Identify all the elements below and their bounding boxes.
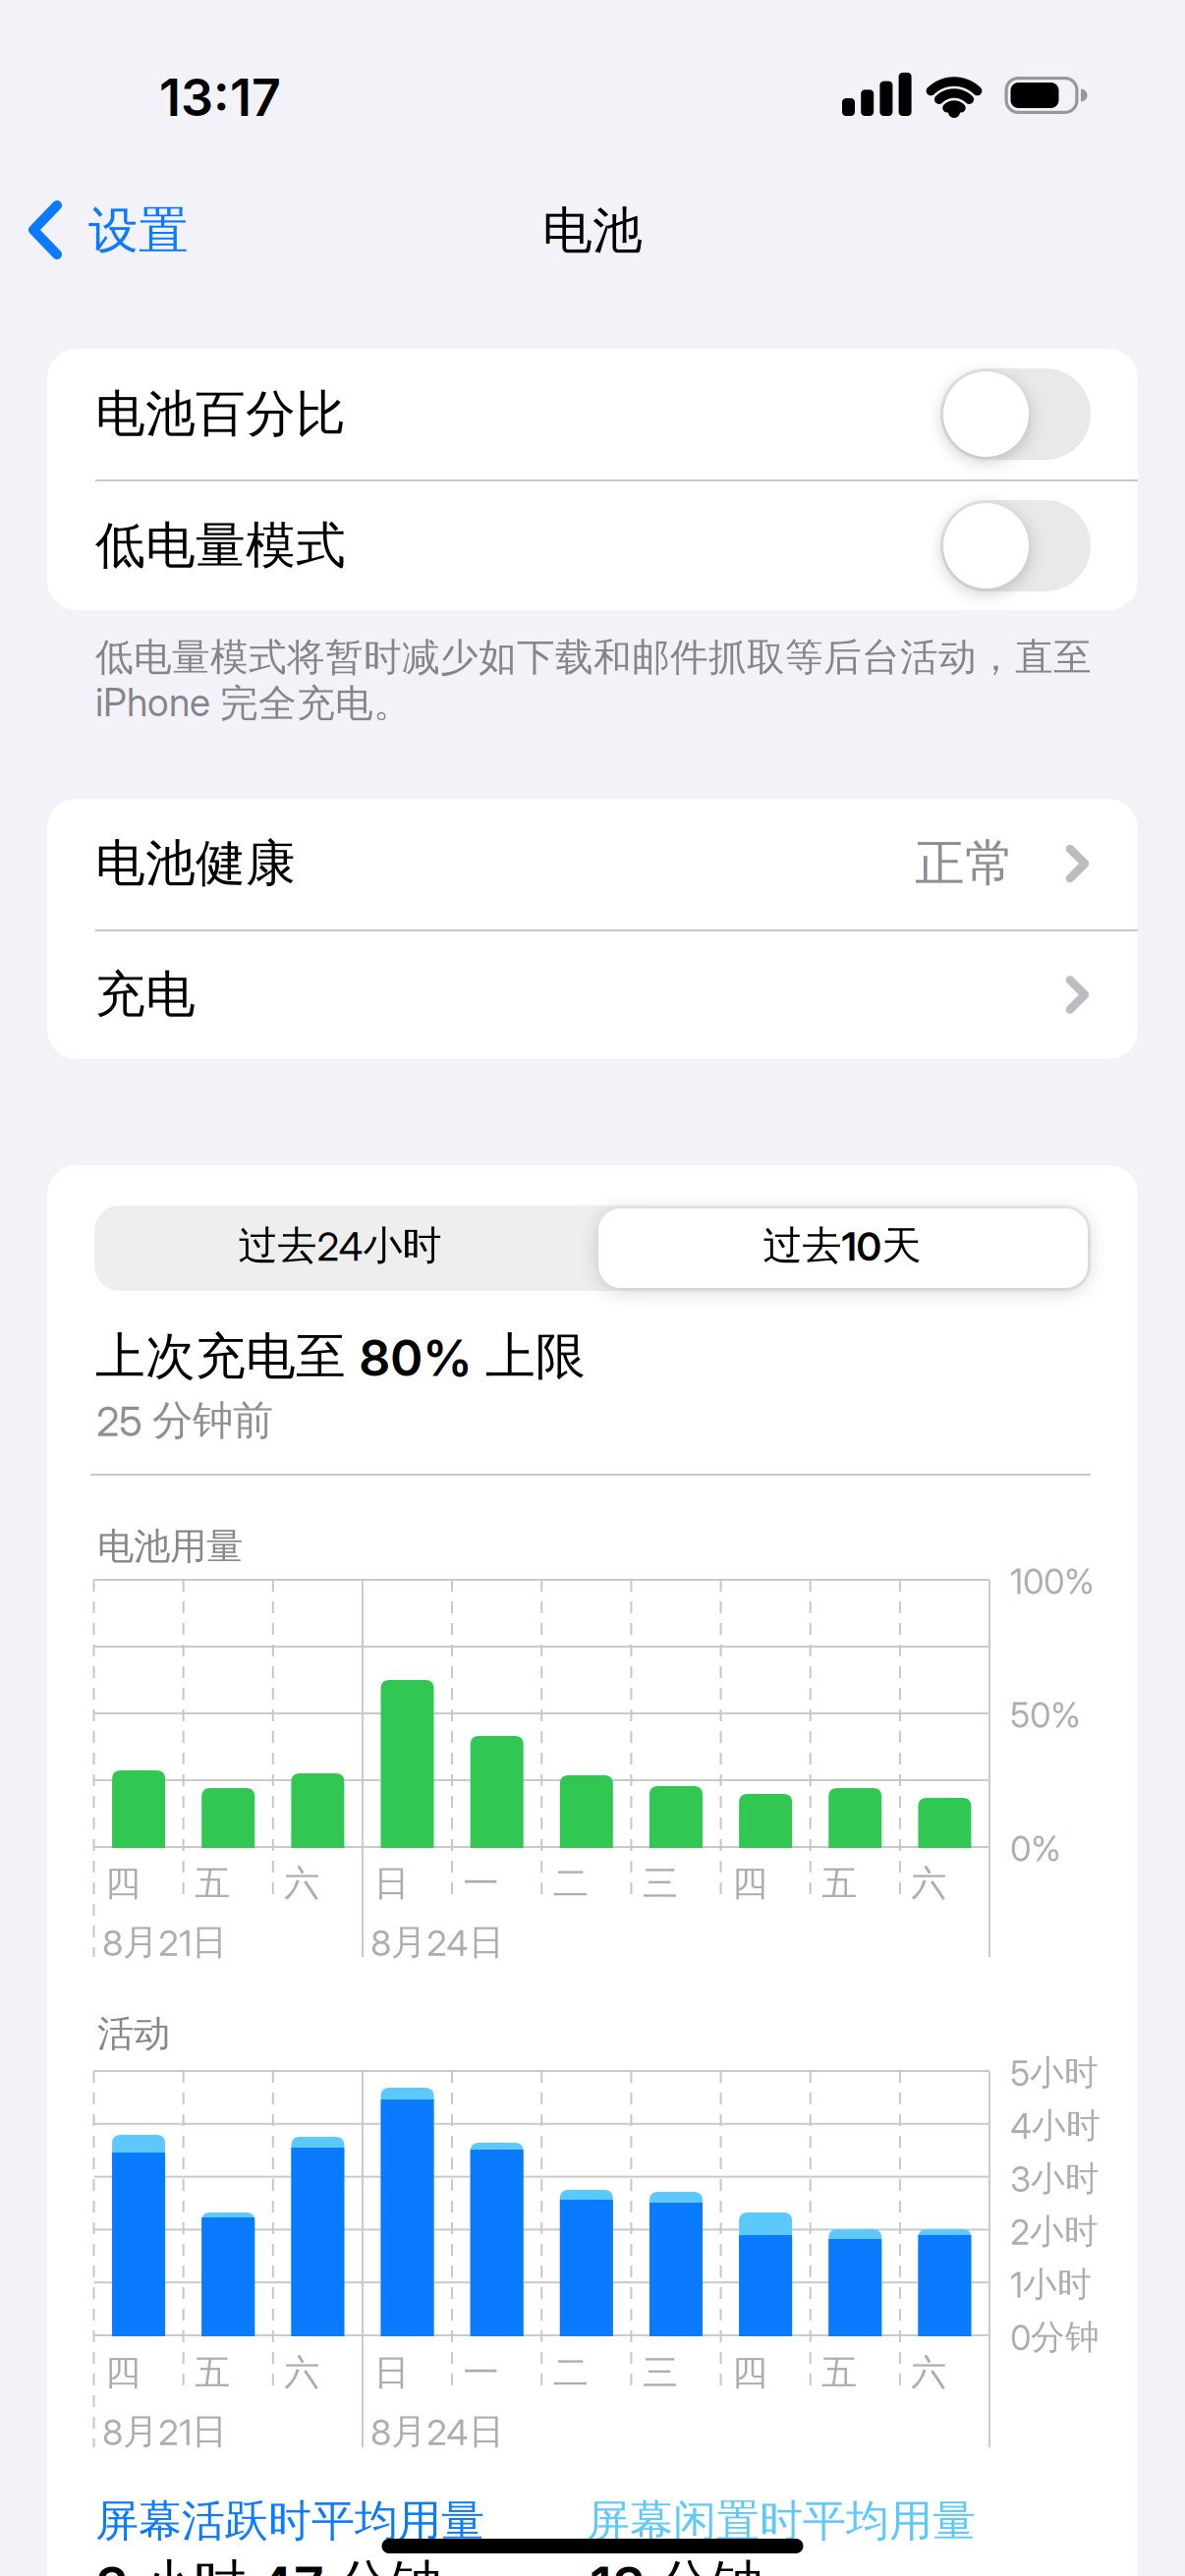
button[interactable]: 充电 xyxy=(47,930,1138,1060)
staticText: 一 xyxy=(463,2351,499,2394)
staticText: 日 xyxy=(374,2351,409,2394)
staticText: 100% xyxy=(1010,1562,1095,1602)
staticText: 二 xyxy=(553,2351,588,2394)
staticText: 四 xyxy=(105,1862,141,1905)
staticText: 3 小时 47 分钟 xyxy=(95,2553,441,2576)
staticText: 五 xyxy=(822,1862,857,1905)
staticText: iPhone 完全充电。 xyxy=(95,680,412,727)
staticText: 四 xyxy=(732,2351,767,2394)
staticText: 设置 xyxy=(88,200,189,261)
staticText: 2小时 xyxy=(1010,2211,1099,2252)
staticText: 0分钟 xyxy=(1010,2316,1100,2358)
staticText: 低电量模式将暂时减少如下载和邮件抓取等后台活动，直至 xyxy=(95,634,1092,681)
staticText: 0% xyxy=(1010,1829,1061,1869)
staticText: 8月21日 xyxy=(102,2410,227,2453)
staticText: 3小时 xyxy=(1010,2158,1100,2200)
button[interactable] xyxy=(940,368,1091,460)
staticText: 四 xyxy=(732,1862,767,1905)
staticText: 二 xyxy=(553,1862,588,1905)
staticText: 活动 xyxy=(97,2011,170,2056)
staticText: 五 xyxy=(822,2351,857,2394)
staticText: 13 分钟 xyxy=(590,2553,762,2576)
staticText: 五 xyxy=(195,2351,230,2394)
staticText: 5小时 xyxy=(1010,2052,1099,2094)
button[interactable]: 设置 xyxy=(10,182,241,280)
staticText: 电池百分比 xyxy=(95,384,346,445)
staticText: 六 xyxy=(911,2351,947,2394)
staticText: 低电量模式 xyxy=(95,515,346,576)
staticText: 上次充电至 80% 上限 xyxy=(95,1326,586,1387)
staticText: 过去24小时 xyxy=(238,1222,442,1270)
staticText: 8月24日 xyxy=(370,1921,504,1964)
staticText: 一 xyxy=(463,1862,499,1905)
staticText: 四 xyxy=(105,2351,141,2394)
staticText: 日 xyxy=(374,1862,409,1905)
staticText: 电池 xyxy=(542,200,643,261)
staticText: 三 xyxy=(643,1862,678,1905)
staticText: 25 分钟前 xyxy=(96,1396,273,1446)
staticText: 屏幕闲置时平均用量 xyxy=(587,2494,976,2548)
staticText: 1小时 xyxy=(1010,2263,1092,2305)
staticText: 六 xyxy=(911,1862,947,1905)
button[interactable]: 过去24小时 xyxy=(97,1205,595,1290)
staticText: 三 xyxy=(643,2351,678,2394)
staticText: 充电 xyxy=(95,964,196,1025)
staticText: 六 xyxy=(284,2351,320,2394)
button[interactable]: 电池健康 xyxy=(47,799,1138,928)
staticText: 50% xyxy=(1010,1695,1081,1736)
button[interactable]: 过去10天 xyxy=(598,1205,1088,1290)
button[interactable] xyxy=(940,500,1091,591)
staticText: 8月21日 xyxy=(102,1921,227,1964)
staticText: 五 xyxy=(195,1862,230,1905)
staticText: 屏幕活跃时平均用量 xyxy=(95,2494,484,2548)
staticText: 电池健康 xyxy=(95,833,296,894)
staticText: 4小时 xyxy=(1010,2105,1100,2147)
staticText: 六 xyxy=(284,1862,320,1905)
staticText: 电池用量 xyxy=(97,1524,243,1569)
button[interactable]: 屏幕闲置时平均用量 xyxy=(587,2490,999,2552)
button[interactable]: 屏幕活跃时平均用量 xyxy=(95,2490,508,2552)
staticText: 8月24日 xyxy=(370,2410,504,2453)
staticText: 13:17 xyxy=(159,67,281,127)
staticText: 过去10天 xyxy=(763,1222,921,1270)
staticText: 正常 xyxy=(915,833,1015,894)
